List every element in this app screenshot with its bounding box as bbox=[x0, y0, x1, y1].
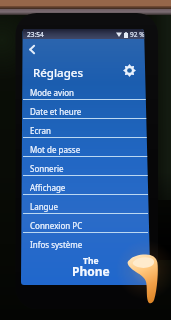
button[interactable]: Mot de passe bbox=[23, 138, 148, 157]
button[interactable]: Mode avion bbox=[23, 81, 148, 100]
staticText: Date et heure bbox=[30, 106, 82, 117]
button[interactable]: Connexion PC bbox=[23, 214, 148, 233]
staticText: Mot de passe bbox=[30, 144, 81, 155]
button[interactable]: Infos système bbox=[23, 233, 148, 252]
button[interactable]: Sonnerie bbox=[23, 157, 148, 176]
staticText: Infos système bbox=[30, 239, 83, 250]
staticText: Sonnerie bbox=[30, 163, 64, 174]
button[interactable]: Langue bbox=[23, 195, 148, 214]
button[interactable]: Date et heure bbox=[23, 100, 148, 119]
staticText: The bbox=[83, 255, 99, 267]
staticText: Phone bbox=[72, 263, 110, 279]
button[interactable]: Settings bbox=[121, 62, 137, 78]
button[interactable]: Ecran bbox=[23, 119, 148, 138]
staticText: 92 % bbox=[130, 30, 145, 39]
button[interactable]: Affichage bbox=[23, 176, 148, 195]
staticText: Réglages bbox=[33, 65, 84, 81]
staticText: 23:54 bbox=[27, 30, 44, 39]
staticText: Mode avion bbox=[30, 87, 75, 98]
staticText: Ecran bbox=[30, 125, 51, 136]
button[interactable]: Back bbox=[25, 42, 39, 56]
staticText: Affichage bbox=[30, 182, 66, 193]
staticText: Langue bbox=[30, 201, 58, 212]
staticText: Connexion PC bbox=[30, 220, 83, 231]
